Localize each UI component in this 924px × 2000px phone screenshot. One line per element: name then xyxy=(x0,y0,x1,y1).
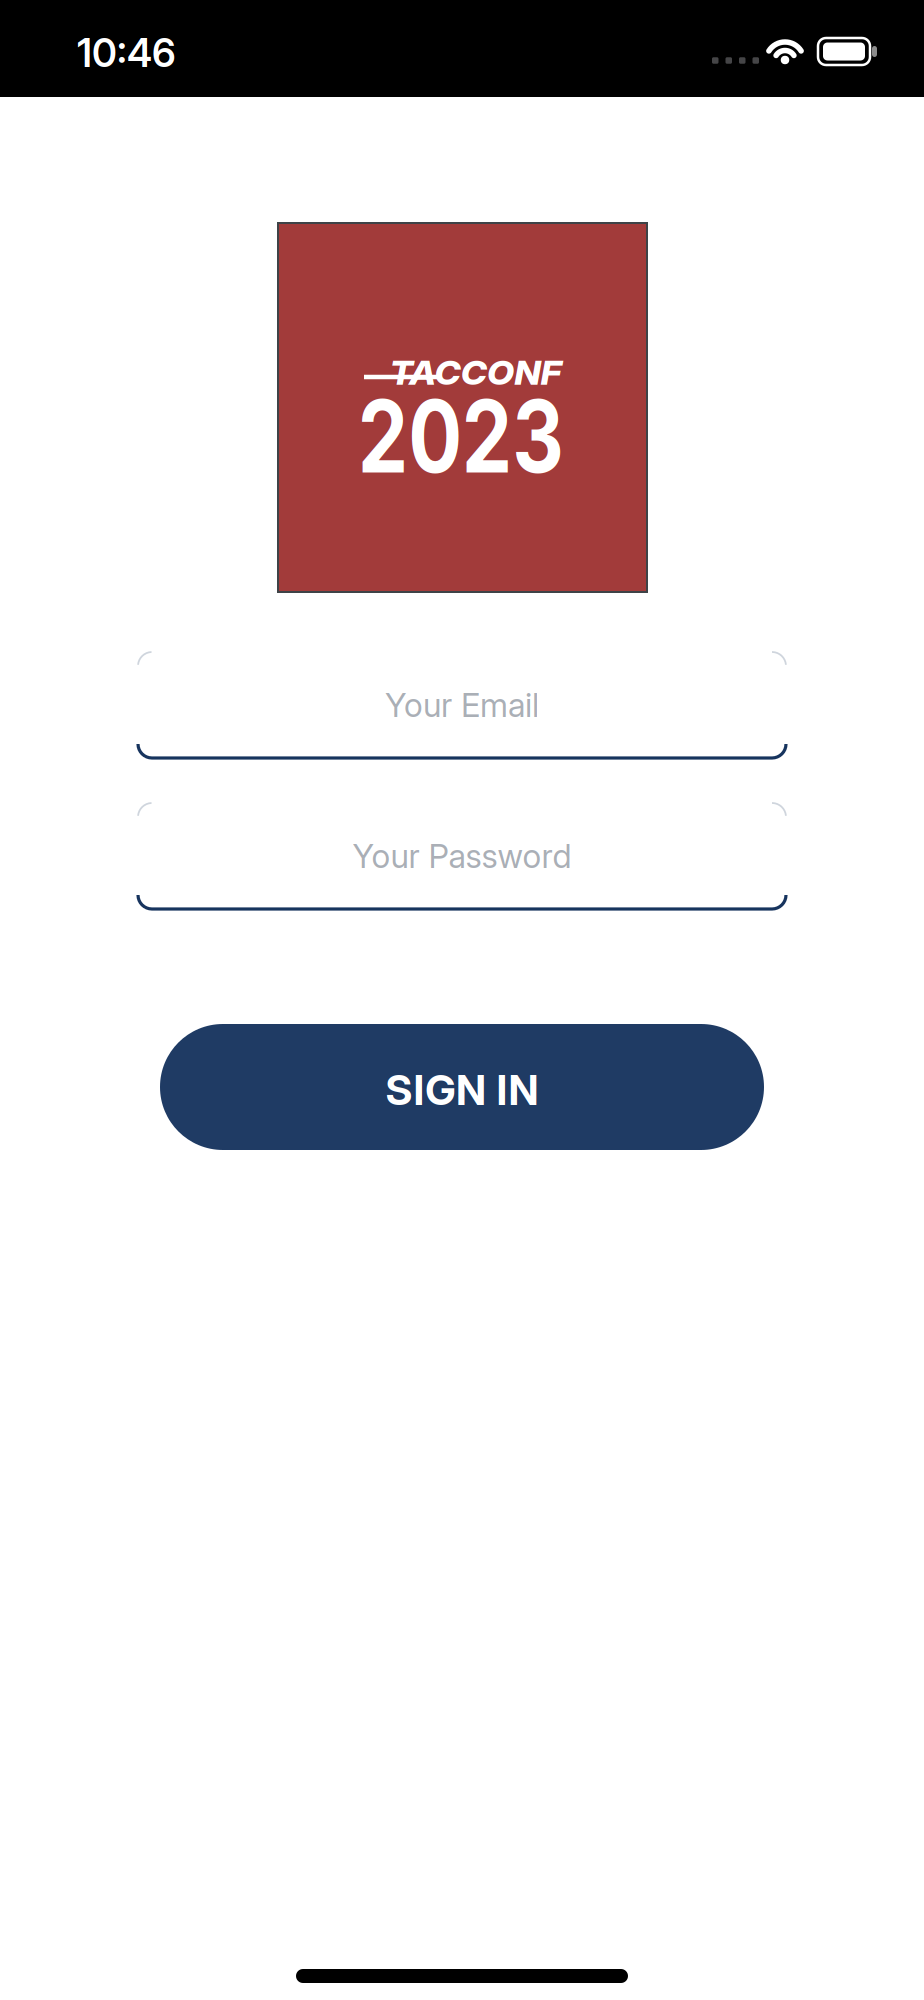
staticText: Your Email xyxy=(385,685,539,725)
staticText: TACCONF xyxy=(393,352,557,393)
button[interactable]: Your Password xyxy=(138,803,786,909)
staticText: 10:46 xyxy=(77,30,176,76)
staticText: SIGN IN xyxy=(386,1065,538,1115)
button[interactable]: SIGN IN xyxy=(160,1024,764,1150)
button[interactable]: Your Email xyxy=(138,652,786,758)
staticText: Your Password xyxy=(352,836,571,876)
staticText: 2023 xyxy=(332,375,590,496)
